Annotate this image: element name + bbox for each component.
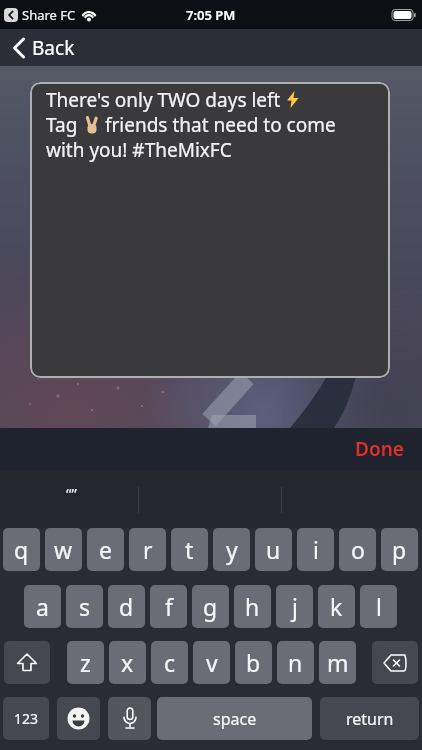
button[interactable]: n <box>277 641 314 684</box>
button[interactable]: r <box>129 528 166 571</box>
staticText: k <box>330 591 343 622</box>
staticText: v <box>206 647 218 678</box>
staticText: h <box>245 591 260 622</box>
staticText: s <box>79 591 91 622</box>
staticText: p <box>392 534 407 565</box>
staticText: 123 <box>14 709 39 728</box>
button[interactable]: p <box>381 528 418 571</box>
button[interactable]: t <box>171 528 208 571</box>
staticText: with you! #TheMixFC <box>46 137 232 162</box>
staticText: n <box>288 647 303 678</box>
button[interactable]: s <box>66 585 103 628</box>
button[interactable]: w <box>45 528 82 571</box>
button[interactable]: f <box>150 585 187 628</box>
button[interactable]: Back <box>12 35 75 61</box>
button[interactable]: o <box>339 528 376 571</box>
staticText: m <box>327 647 349 678</box>
staticText: j <box>292 591 298 622</box>
button[interactable] <box>372 641 418 684</box>
button[interactable]: i <box>297 528 334 571</box>
staticText: 7:05 PM <box>186 6 236 24</box>
button[interactable]: 123 <box>3 697 49 740</box>
staticText: There's only TWO days left <box>46 87 286 112</box>
staticText: e <box>99 534 112 565</box>
button[interactable]: b <box>235 641 272 684</box>
button[interactable]: d <box>108 585 145 628</box>
button[interactable]: c <box>151 641 188 684</box>
button[interactable]: l <box>360 585 397 628</box>
button[interactable]: g <box>192 585 229 628</box>
button[interactable]: There's only TWO days left <box>30 82 390 378</box>
staticText: x <box>121 647 134 678</box>
button[interactable]: u <box>255 528 292 571</box>
button[interactable]: q <box>3 528 40 571</box>
button[interactable]: x <box>109 641 146 684</box>
staticText: friends that need to come <box>100 112 336 137</box>
staticText: d <box>119 591 134 622</box>
button[interactable]: h <box>234 585 271 628</box>
staticText: Share FC <box>22 6 76 24</box>
staticText: r <box>143 534 153 565</box>
button[interactable] <box>4 641 50 684</box>
staticText: y <box>226 534 238 565</box>
staticText: l <box>376 591 382 622</box>
button[interactable]: z <box>67 641 104 684</box>
button[interactable] <box>108 697 151 740</box>
staticText: i <box>313 534 319 565</box>
staticText: return <box>346 708 394 730</box>
button[interactable]: Done <box>355 436 404 462</box>
button[interactable]: e <box>87 528 124 571</box>
button[interactable]: y <box>213 528 250 571</box>
button[interactable] <box>57 697 100 740</box>
staticText: t <box>185 534 194 565</box>
staticText: Done <box>355 436 404 462</box>
staticText: space <box>213 708 257 730</box>
staticText: a <box>36 591 49 622</box>
staticText: u <box>266 534 281 565</box>
staticText: “” <box>66 483 77 503</box>
button[interactable]: “” <box>52 480 90 506</box>
staticText: c <box>164 647 176 678</box>
staticText: o <box>351 534 365 565</box>
button[interactable]: a <box>24 585 61 628</box>
staticText: f <box>165 591 173 622</box>
button[interactable]: k <box>318 585 355 628</box>
button[interactable]: space <box>157 697 312 740</box>
staticText: Tag <box>46 112 83 137</box>
button[interactable]: m <box>319 641 356 684</box>
staticText: b <box>246 647 261 678</box>
staticText: q <box>14 534 29 565</box>
button[interactable]: j <box>276 585 313 628</box>
staticText: z <box>80 647 91 678</box>
staticText: Back <box>32 35 75 61</box>
staticText: w <box>54 534 73 565</box>
button[interactable]: v <box>193 641 230 684</box>
staticText: g <box>203 591 218 622</box>
button[interactable]: return <box>320 697 419 740</box>
